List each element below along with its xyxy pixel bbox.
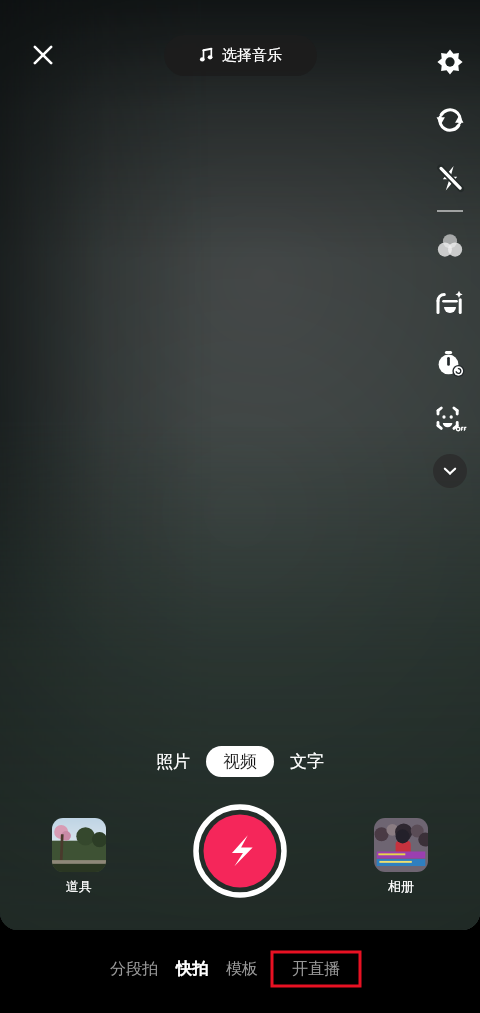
staticText: 分段拍 — [110, 959, 158, 979]
staticText: 道具 — [66, 878, 92, 894]
staticText: 相册 — [388, 878, 414, 894]
staticText: 模板 — [226, 959, 258, 979]
button[interactable]: 倒计时 — [428, 340, 472, 384]
button[interactable]: 开直播 — [272, 952, 360, 986]
button[interactable]: 道具 — [52, 818, 106, 894]
button[interactable]: 文字 — [290, 751, 324, 772]
button[interactable]: 分段拍 — [110, 952, 158, 986]
staticText: 照片 — [156, 751, 190, 772]
staticText: 选择音乐 — [222, 46, 282, 65]
button[interactable]: 美化 — [428, 282, 472, 326]
button[interactable]: 视频 — [223, 751, 257, 772]
staticText: 快拍 — [176, 959, 208, 979]
button[interactable]: 人脸识别 — [428, 398, 472, 442]
button[interactable]: 相册 — [374, 818, 428, 894]
staticText: 视频 — [223, 751, 257, 772]
button[interactable]: 拍摄 — [194, 805, 286, 897]
button[interactable]: 滤镜 — [428, 224, 472, 268]
button[interactable]: 照片 — [156, 751, 190, 772]
button[interactable]: 快拍 — [176, 952, 208, 986]
staticText: 开直播 — [292, 959, 340, 979]
button[interactable]: 展开更多 — [433, 454, 467, 488]
button[interactable]: 设置 — [428, 40, 472, 84]
button[interactable]: 关闭 — [22, 34, 64, 76]
staticText: 文字 — [290, 751, 324, 772]
button[interactable]: 闪光灯关闭 — [428, 156, 472, 200]
button[interactable]: 选择音乐 — [164, 35, 317, 76]
button[interactable]: 模板 — [226, 952, 258, 986]
button[interactable]: 翻转摄像头 — [428, 98, 472, 142]
